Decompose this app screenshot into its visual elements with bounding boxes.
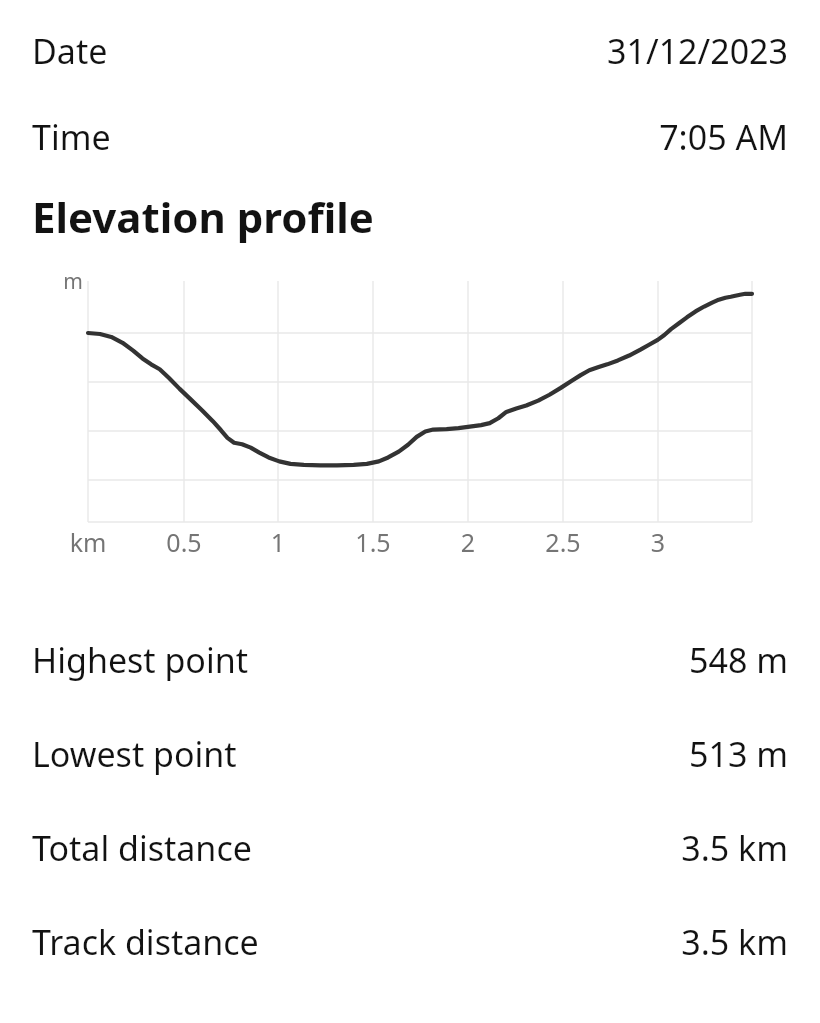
staticText: m (0, 267, 83, 296)
staticText: 3.5 km (681, 919, 788, 965)
staticText: 31/12/2023 (607, 28, 788, 74)
staticText: 3 (618, 525, 698, 559)
staticText: 1 (238, 525, 318, 559)
staticText: 3.5 km (681, 825, 788, 871)
button[interactable]: Date (0, 8, 820, 94)
staticText: Elevation profile (32, 188, 374, 245)
other: Elevation profile chart (0, 267, 820, 567)
button[interactable]: Highest point (0, 613, 820, 707)
staticText: 2.5 (523, 525, 603, 559)
button[interactable]: Total distance (0, 801, 820, 895)
staticText: Track distance (32, 919, 259, 965)
button[interactable]: Time (0, 94, 820, 180)
staticText: Time (32, 114, 111, 160)
staticText: 2 (428, 525, 508, 559)
staticText: Total distance (32, 825, 252, 871)
staticText: 7:05 AM (659, 114, 788, 160)
staticText: Lowest point (32, 731, 237, 777)
staticText: Date (32, 28, 108, 74)
staticText: km (48, 525, 128, 559)
staticText: Highest point (32, 637, 249, 683)
staticText: 513 m (689, 731, 788, 777)
button[interactable]: Track distance (0, 895, 820, 989)
staticText: 548 m (689, 637, 788, 683)
button[interactable]: Lowest point (0, 707, 820, 801)
staticText: 0.5 (144, 525, 224, 559)
staticText: 1.5 (333, 525, 413, 559)
